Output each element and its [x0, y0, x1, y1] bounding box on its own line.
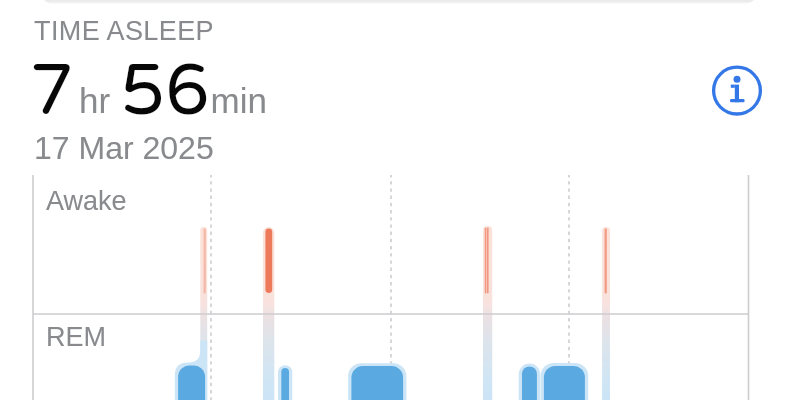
button[interactable]: Info — [709, 63, 765, 119]
